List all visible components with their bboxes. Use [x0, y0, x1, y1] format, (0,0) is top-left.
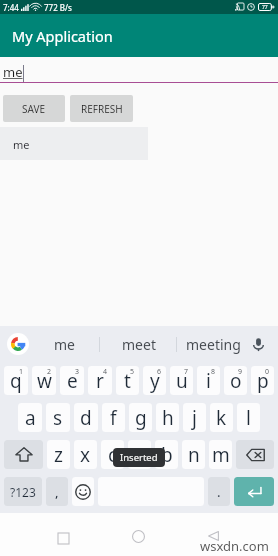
staticText: 2 [47, 367, 52, 377]
button[interactable]: m [209, 440, 232, 469]
staticText: . [217, 483, 221, 501]
staticText: x [80, 442, 91, 468]
button[interactable]: w [32, 366, 56, 395]
staticText: 5 [130, 367, 135, 377]
button[interactable]: a [18, 403, 42, 432]
button[interactable]: p [251, 366, 274, 395]
staticText: b [161, 442, 173, 468]
button[interactable]: . [208, 477, 230, 506]
staticText: r [96, 368, 104, 394]
staticText: c [108, 442, 118, 468]
staticText: me [54, 335, 75, 354]
button[interactable]: Back [195, 518, 231, 554]
button[interactable]: meet [103, 326, 175, 362]
button[interactable]: Google [7, 333, 29, 355]
staticText: meeting [186, 335, 241, 354]
staticText: 772 B/s [44, 2, 72, 13]
button[interactable]: z [47, 440, 70, 469]
staticText: n [188, 442, 200, 468]
button[interactable]: j [183, 403, 206, 432]
staticText: me [13, 137, 30, 152]
button[interactable]: Backspace [236, 440, 274, 469]
staticText: l [246, 405, 251, 431]
staticText: v [135, 442, 145, 468]
staticText: 9 [238, 367, 243, 377]
staticText: i [206, 368, 211, 394]
button[interactable]: h [156, 403, 179, 432]
staticText: My Application [12, 26, 113, 46]
staticText: Inserted [120, 451, 158, 464]
button[interactable]: e [60, 366, 84, 395]
button[interactable]: n [182, 440, 205, 469]
button[interactable]: ?123 [4, 477, 42, 506]
button[interactable]: me [36, 326, 92, 362]
button[interactable]: t [116, 366, 139, 395]
staticText: m [212, 442, 230, 468]
button[interactable]: f [102, 403, 125, 432]
staticText: 1 [19, 367, 24, 377]
staticText: q [10, 368, 22, 394]
button[interactable]: c [101, 440, 124, 469]
button[interactable]: x [74, 440, 97, 469]
button[interactable]: Home [120, 518, 156, 554]
button[interactable]: s [46, 403, 70, 432]
staticText: 4 [103, 367, 108, 377]
staticText: t [124, 368, 131, 394]
staticText: SAVE [22, 102, 46, 116]
staticText: 7:44 [3, 2, 19, 13]
button[interactable]: Recents [45, 520, 81, 556]
staticText: 77 [262, 4, 268, 11]
button[interactable]: g [129, 403, 152, 432]
staticText: 8 [211, 367, 216, 377]
button[interactable]: u [170, 366, 193, 395]
staticText: , [55, 483, 59, 501]
button[interactable]: Emoji [72, 477, 94, 506]
staticText: o [230, 368, 242, 394]
staticText: h [162, 405, 174, 431]
staticText: j [192, 405, 197, 431]
staticText: z [54, 442, 63, 468]
staticText: meet [122, 335, 156, 354]
staticText: a [25, 405, 36, 431]
button[interactable]: r [88, 366, 112, 395]
button[interactable]: , [46, 477, 68, 506]
staticText: k [216, 405, 227, 431]
button[interactable]: l [237, 403, 260, 432]
button[interactable]: Voice input [251, 337, 266, 352]
button[interactable]: k [210, 403, 233, 432]
button[interactable]: b [155, 440, 178, 469]
button[interactable]: SAVE [3, 95, 65, 122]
staticText: y [150, 368, 160, 394]
button[interactable]: meeting [176, 326, 250, 362]
staticText: 0 [265, 367, 270, 377]
button[interactable]: o [224, 366, 247, 395]
staticText: 3 [75, 367, 80, 377]
staticText: f [110, 405, 117, 431]
staticText: ?123 [10, 484, 36, 500]
button[interactable]: v [128, 440, 151, 469]
staticText: s [53, 405, 63, 431]
button[interactable]: Shift [4, 440, 43, 469]
staticText: 7 [184, 367, 189, 377]
staticText: w [37, 368, 52, 394]
button[interactable]: i [197, 366, 220, 395]
button[interactable]: REFRESH [70, 95, 133, 122]
button[interactable]: me [0, 127, 148, 160]
button[interactable]: Enter [234, 477, 274, 506]
button[interactable]: d [74, 403, 98, 432]
staticText: e [67, 368, 78, 394]
staticText: wsxdn.com [200, 537, 269, 555]
button[interactable]: y [143, 366, 166, 395]
staticText: 6 [157, 367, 162, 377]
staticText: g [135, 405, 147, 431]
staticText: p [257, 368, 269, 394]
staticText: me [3, 63, 23, 81]
staticText: u [176, 368, 188, 394]
button[interactable]: q [4, 366, 28, 395]
staticText: d [80, 405, 92, 431]
staticText: REFRESH [81, 102, 123, 116]
